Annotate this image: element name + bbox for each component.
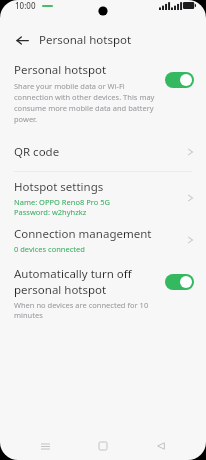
button[interactable]: Toggle bbox=[165, 274, 194, 290]
staticText: Personal hotspot bbox=[39, 32, 132, 48]
button[interactable]: Connection management bbox=[0, 226, 206, 254]
button[interactable]: Back bbox=[11, 29, 33, 51]
staticText: Automatically turn off personal hotspot bbox=[14, 266, 157, 297]
button[interactable]: Back bbox=[148, 433, 174, 459]
button[interactable]: Personal hotspot bbox=[0, 56, 206, 132]
staticText: QR code bbox=[14, 144, 60, 160]
button[interactable]: Hotspot settings bbox=[0, 179, 206, 217]
staticText: 10:00 bbox=[15, 0, 36, 11]
button[interactable]: Automatically turn off personal hotspot bbox=[0, 266, 206, 320]
staticText: 0 devices connected bbox=[14, 244, 85, 254]
button[interactable]: QR code bbox=[0, 138, 206, 168]
staticText: Name: OPPO Reno8 Pro 5G bbox=[14, 197, 110, 207]
staticText: Connection management bbox=[14, 226, 152, 242]
staticText: Share your mobile data or Wi-Fi connecti… bbox=[14, 81, 157, 124]
staticText: Personal hotspot bbox=[14, 62, 107, 78]
staticText: Password: w2hyhzkz bbox=[14, 207, 87, 217]
staticText: Hotspot settings bbox=[14, 179, 104, 195]
button[interactable]: Recent apps bbox=[32, 433, 58, 459]
staticText: When no devices are connected for 10 min… bbox=[14, 300, 157, 320]
button[interactable]: Home bbox=[90, 433, 116, 459]
button[interactable]: Toggle bbox=[165, 72, 194, 88]
